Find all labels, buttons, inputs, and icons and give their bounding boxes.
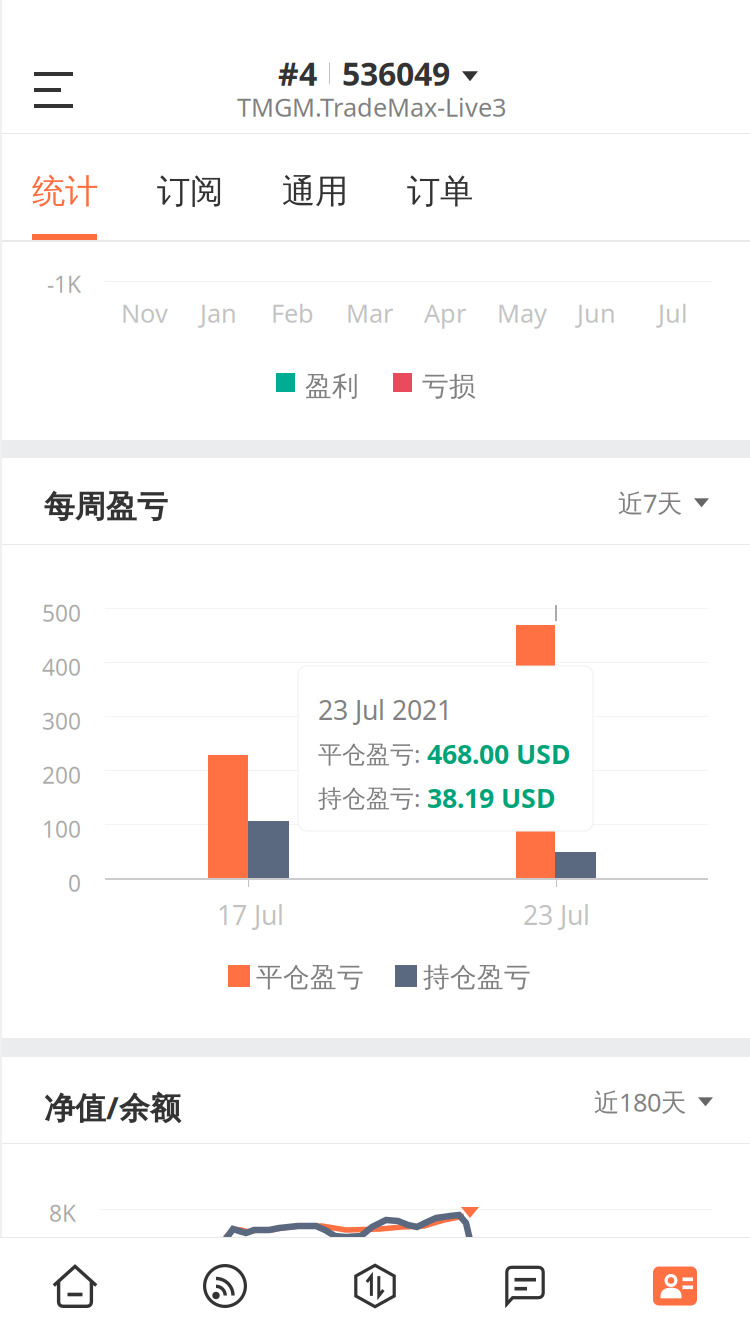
staticText: 订阅 <box>157 171 223 212</box>
button[interactable]: 订单 <box>407 134 472 240</box>
staticText: May <box>497 296 547 330</box>
staticText: 200 <box>42 760 81 790</box>
staticText: 近7天 <box>618 486 682 520</box>
staticText: 468.00 USD <box>420 736 571 771</box>
button[interactable]: Feed <box>150 1238 300 1334</box>
staticText: Feb <box>271 296 314 330</box>
staticText: 持仓盈亏: <box>318 782 420 814</box>
staticText: 通用 <box>282 171 348 212</box>
staticText: 400 <box>42 652 81 682</box>
staticText: Jun <box>577 296 616 330</box>
staticText: -1K <box>47 269 81 299</box>
staticText: 亏损 <box>422 370 476 403</box>
button[interactable]: Trade <box>300 1238 450 1334</box>
staticText: 统计 <box>32 171 98 212</box>
staticText: 订单 <box>407 171 473 212</box>
staticText: 8K <box>49 1198 76 1228</box>
button[interactable]: Menu <box>12 48 95 132</box>
staticText: 盈利 <box>305 370 359 403</box>
button[interactable]: 通用 <box>282 134 347 240</box>
staticText: 536049 <box>342 52 450 94</box>
button[interactable]: Home <box>0 1238 150 1334</box>
staticText: 平仓盈亏: <box>318 738 420 770</box>
staticText: TMGM.TradeMax-Live3 <box>237 90 506 124</box>
button[interactable]: 统计 <box>32 134 97 240</box>
button[interactable]: Messages <box>450 1238 600 1334</box>
staticText: 每周盈亏 <box>44 488 168 526</box>
staticText: 净值/余额 <box>44 1087 181 1128</box>
staticText: 500 <box>42 598 81 628</box>
button[interactable]: 订阅 <box>157 134 222 240</box>
staticText: 38.19 USD <box>420 780 556 815</box>
staticText: Apr <box>424 296 466 330</box>
staticText: 0 <box>68 868 81 898</box>
button[interactable]: 近7天 <box>604 462 723 544</box>
staticText: 23 Jul 2021 <box>318 692 452 727</box>
staticText: Jan <box>200 296 237 330</box>
staticText: 持仓盈亏 <box>423 961 531 994</box>
staticText: Mar <box>346 296 393 330</box>
staticText: 17 Jul <box>217 897 284 932</box>
staticText: #4 <box>278 52 317 94</box>
staticText: 平仓盈亏 <box>256 961 364 994</box>
staticText: 100 <box>42 814 81 844</box>
staticText: 近180天 <box>594 1085 686 1119</box>
button[interactable]: Account <box>600 1238 750 1334</box>
button[interactable]: #4 <box>270 44 560 132</box>
button[interactable]: 近180天 <box>580 1061 727 1143</box>
staticText: Nov <box>121 296 168 330</box>
staticText: Jul <box>658 296 688 330</box>
staticText: 300 <box>42 706 81 736</box>
staticText: 23 Jul <box>523 897 590 932</box>
